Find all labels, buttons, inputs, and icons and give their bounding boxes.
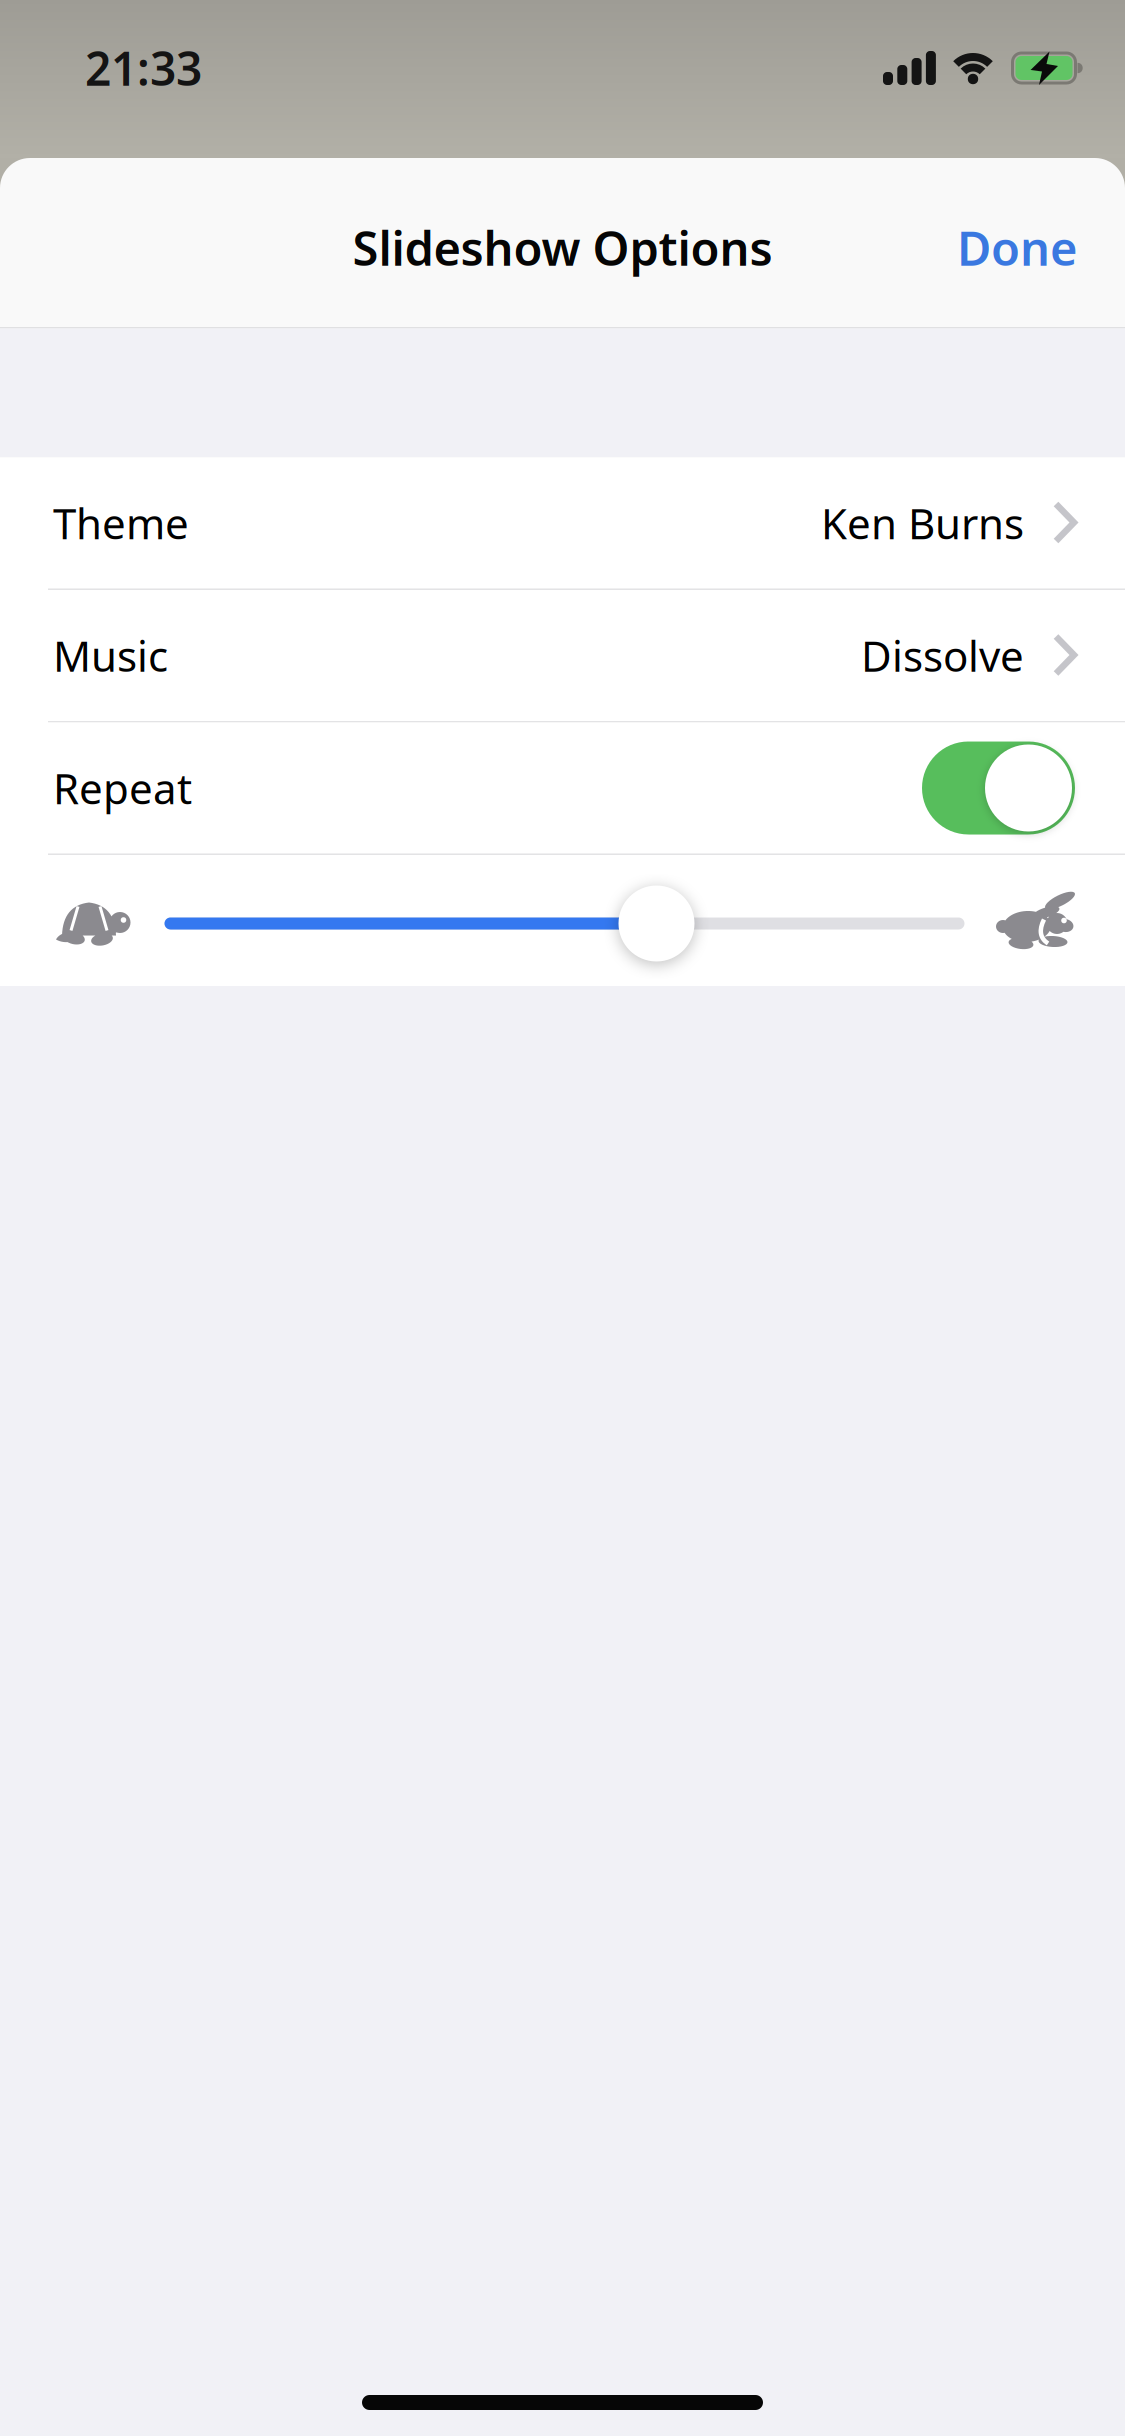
- button[interactable]: Slideshow speed: [0, 855, 1125, 986]
- staticText: Done: [957, 215, 1077, 279]
- staticText: Ken Burns: [821, 494, 1024, 552]
- staticText: Music: [53, 627, 168, 684]
- button[interactable]: Music: [0, 590, 1125, 721]
- staticText: Dissolve: [861, 627, 1024, 684]
- button[interactable]: Done: [957, 215, 1077, 279]
- staticText: Slideshow Options: [352, 215, 772, 279]
- staticText: Repeat: [53, 759, 192, 817]
- button[interactable]: Theme: [0, 457, 1125, 588]
- button[interactable]: Repeat: [922, 741, 1075, 834]
- staticText: Theme: [53, 494, 189, 552]
- staticText: 21:33: [85, 37, 202, 99]
